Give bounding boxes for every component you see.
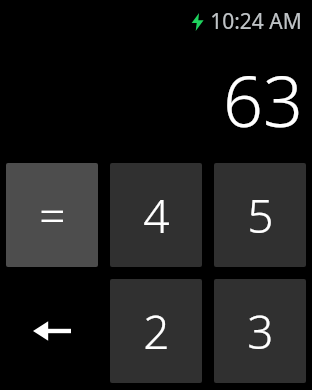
staticText: 63 bbox=[223, 52, 303, 147]
staticText: 10:24 AM bbox=[210, 7, 302, 36]
button[interactable]: 3 bbox=[214, 279, 306, 383]
staticText: 5 bbox=[247, 184, 274, 247]
staticText: 2 bbox=[143, 300, 170, 363]
button[interactable]: 5 bbox=[214, 163, 306, 267]
button[interactable]: Backspace bbox=[6, 279, 98, 383]
staticText: = bbox=[39, 184, 66, 247]
button[interactable]: 2 bbox=[110, 279, 202, 383]
staticText: 4 bbox=[143, 184, 170, 247]
button[interactable]: = bbox=[6, 163, 98, 267]
staticText: 3 bbox=[247, 300, 274, 363]
button[interactable]: 4 bbox=[110, 163, 202, 267]
